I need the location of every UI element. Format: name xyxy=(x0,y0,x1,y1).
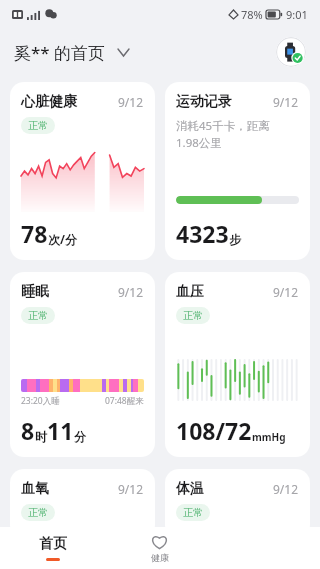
button[interactable]: 首页 xyxy=(0,527,106,569)
staticText: 血压 xyxy=(176,283,204,301)
staticText: 108/72 xyxy=(176,415,252,446)
button[interactable]: 运动记录 xyxy=(165,82,310,260)
staticText: 血氧 xyxy=(21,480,49,498)
button[interactable]: Device account xyxy=(276,37,306,67)
staticText: 正常 xyxy=(28,506,48,519)
staticText: 次/分 xyxy=(48,231,77,247)
staticText: 9/12 xyxy=(118,481,144,497)
button[interactable]: 奚** 的首页 xyxy=(14,37,129,68)
staticText: 心脏健康 xyxy=(21,93,77,111)
button[interactable]: 健康 xyxy=(106,527,213,569)
staticText: 体温 xyxy=(176,480,204,498)
button[interactable]: 心脏健康 xyxy=(10,82,155,260)
staticText: 正常 xyxy=(183,506,203,519)
staticText: 4323 xyxy=(176,218,229,249)
staticText: 消耗45千卡，距离 1.98公里 xyxy=(176,118,270,150)
staticText: 时 xyxy=(35,429,47,444)
staticText: 睡眠 xyxy=(21,283,49,301)
staticText: 正常 xyxy=(28,309,48,322)
staticText: 运动记录 xyxy=(176,93,232,111)
staticText: 首页 xyxy=(39,535,67,553)
staticText: mmHg xyxy=(252,430,286,444)
staticText: 健康 xyxy=(151,552,169,563)
staticText: 78 xyxy=(21,218,48,249)
button[interactable]: 睡眠 xyxy=(10,272,155,457)
staticText: 11 xyxy=(47,415,74,446)
staticText: 正常 xyxy=(183,309,203,322)
staticText: 9/12 xyxy=(273,284,299,300)
button[interactable]: 血氧 xyxy=(10,469,155,539)
staticText: 步 xyxy=(229,232,241,247)
staticText: 正常 xyxy=(28,119,48,132)
staticText: 9:01 xyxy=(286,7,308,22)
staticText: 分 xyxy=(74,429,86,444)
staticText: 23:20入睡 xyxy=(21,395,60,407)
staticText: 07:48醒来 xyxy=(105,395,144,407)
staticText: 78% xyxy=(241,7,263,22)
staticText: 奚** 的首页 xyxy=(14,41,106,64)
staticText: 9/12 xyxy=(273,94,299,110)
staticText: 9/12 xyxy=(118,94,144,110)
staticText: 9/12 xyxy=(273,481,299,497)
staticText: 8 xyxy=(21,415,35,446)
button[interactable]: 体温 xyxy=(165,469,310,539)
button[interactable]: 血压 xyxy=(165,272,310,457)
staticText: 9/12 xyxy=(118,284,144,300)
